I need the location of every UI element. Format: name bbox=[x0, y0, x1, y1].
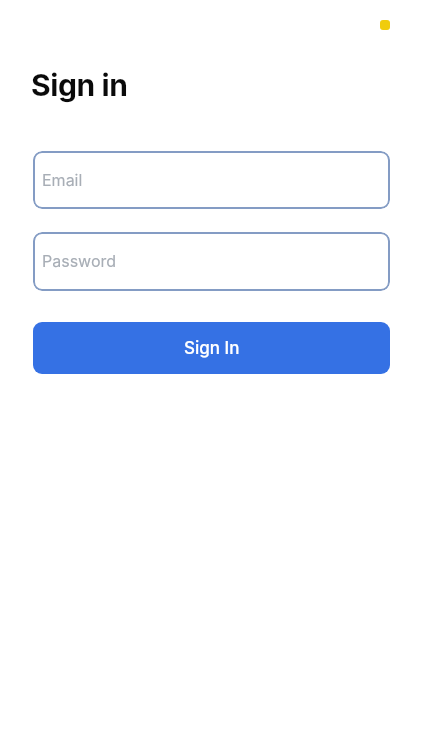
staticText: Sign In bbox=[184, 338, 240, 359]
staticText: Email bbox=[42, 170, 83, 189]
staticText: Password bbox=[42, 251, 117, 270]
button[interactable]: Password bbox=[33, 232, 390, 291]
button[interactable]: Sign In bbox=[33, 322, 390, 374]
button[interactable]: Email bbox=[33, 151, 390, 209]
staticText: Sign in bbox=[31, 67, 128, 103]
